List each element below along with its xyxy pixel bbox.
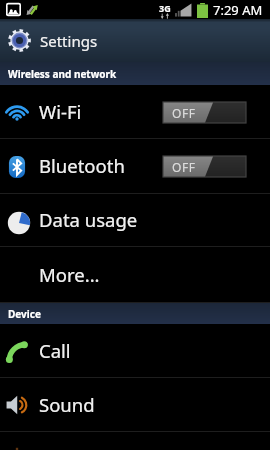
staticText: More... bbox=[39, 262, 100, 287]
staticText: Wi-Fi bbox=[39, 99, 82, 124]
button[interactable]: Call bbox=[0, 324, 270, 378]
button[interactable]: Bluetooth bbox=[0, 139, 270, 194]
button[interactable]: More... bbox=[0, 247, 270, 303]
staticText: OFF bbox=[172, 105, 196, 121]
button[interactable]: Toggle off bbox=[163, 156, 246, 177]
button[interactable]: Wi-Fi bbox=[0, 85, 270, 139]
staticText: Device bbox=[8, 307, 41, 321]
button[interactable]: Settings bbox=[0, 19, 270, 62]
staticText: Bluetooth bbox=[39, 153, 125, 178]
staticText: Data usage bbox=[39, 207, 138, 232]
staticText: Wireless and network bbox=[8, 67, 117, 81]
staticText: Call bbox=[39, 338, 71, 363]
staticText: 3G bbox=[159, 2, 171, 14]
staticText: 7:29 AM bbox=[213, 1, 263, 19]
button[interactable]: Sound bbox=[0, 378, 270, 432]
staticText: OFF bbox=[172, 159, 196, 175]
button[interactable]: Toggle off bbox=[163, 102, 246, 123]
staticText: Settings bbox=[40, 31, 98, 51]
staticText: Sound bbox=[39, 392, 95, 417]
button[interactable]: Data usage bbox=[0, 194, 270, 247]
